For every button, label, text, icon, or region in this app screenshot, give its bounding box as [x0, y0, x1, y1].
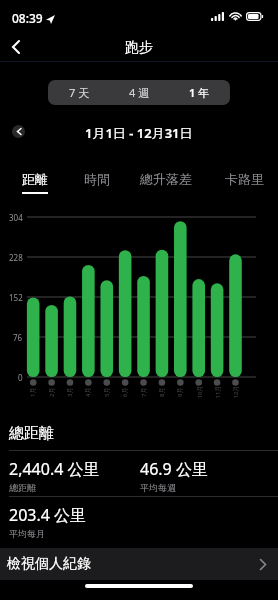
staticText: 228 [9, 252, 23, 263]
staticText: 304 [9, 212, 23, 223]
staticText: 距離 [22, 171, 48, 187]
staticText: 5月 [103, 387, 111, 397]
staticText: 4 週 [129, 85, 150, 100]
staticText: 10月 [195, 385, 203, 398]
staticText: 203.4 公里 [9, 504, 87, 526]
staticText: 1 年 [189, 85, 210, 100]
staticText: 12月 [231, 385, 239, 398]
button[interactable]: Back [3, 32, 29, 62]
button[interactable]: 4 週 [109, 81, 169, 104]
button[interactable]: 卡路里 [217, 168, 272, 190]
staticText: 1月 [29, 387, 37, 397]
staticText: 7 天 [69, 85, 90, 100]
staticText: 2,440.4 公里 [9, 458, 100, 480]
button[interactable]: 時間 [76, 168, 118, 190]
button[interactable]: 檢視個人紀錄 [0, 548, 278, 580]
staticText: 46.9 公里 [140, 458, 208, 480]
button[interactable]: 7 天 [49, 81, 109, 104]
staticText: 11月 [213, 385, 221, 398]
staticText: 總距離 [9, 424, 54, 443]
staticText: 0 [18, 372, 23, 383]
staticText: 檢視個人紀錄 [7, 555, 91, 573]
staticText: 7月 [140, 387, 148, 397]
staticText: 3月 [66, 387, 74, 397]
staticText: 總距離 [9, 482, 36, 493]
button[interactable]: 總升落差 [132, 168, 200, 190]
staticText: 152 [9, 292, 23, 303]
staticText: 平均每週 [140, 482, 176, 493]
staticText: 2月 [48, 387, 56, 397]
staticText: 6月 [121, 387, 129, 397]
staticText: 1月1日 - 12月31日 [85, 124, 193, 142]
button[interactable]: Previous period [12, 125, 25, 138]
staticText: 8月 [158, 387, 166, 397]
staticText: 卡路里 [225, 171, 264, 187]
staticText: 時間 [84, 171, 110, 187]
staticText: 4月 [84, 387, 92, 397]
button[interactable]: 距離 [14, 168, 56, 190]
staticText: 08:39 [12, 10, 43, 26]
staticText: 跑步 [125, 39, 153, 57]
button[interactable]: 1 年 [169, 81, 229, 104]
staticText: 總升落差 [140, 171, 192, 187]
staticText: 平均每月 [9, 528, 45, 539]
staticText: 9月 [176, 387, 184, 397]
staticText: 76 [13, 332, 23, 343]
